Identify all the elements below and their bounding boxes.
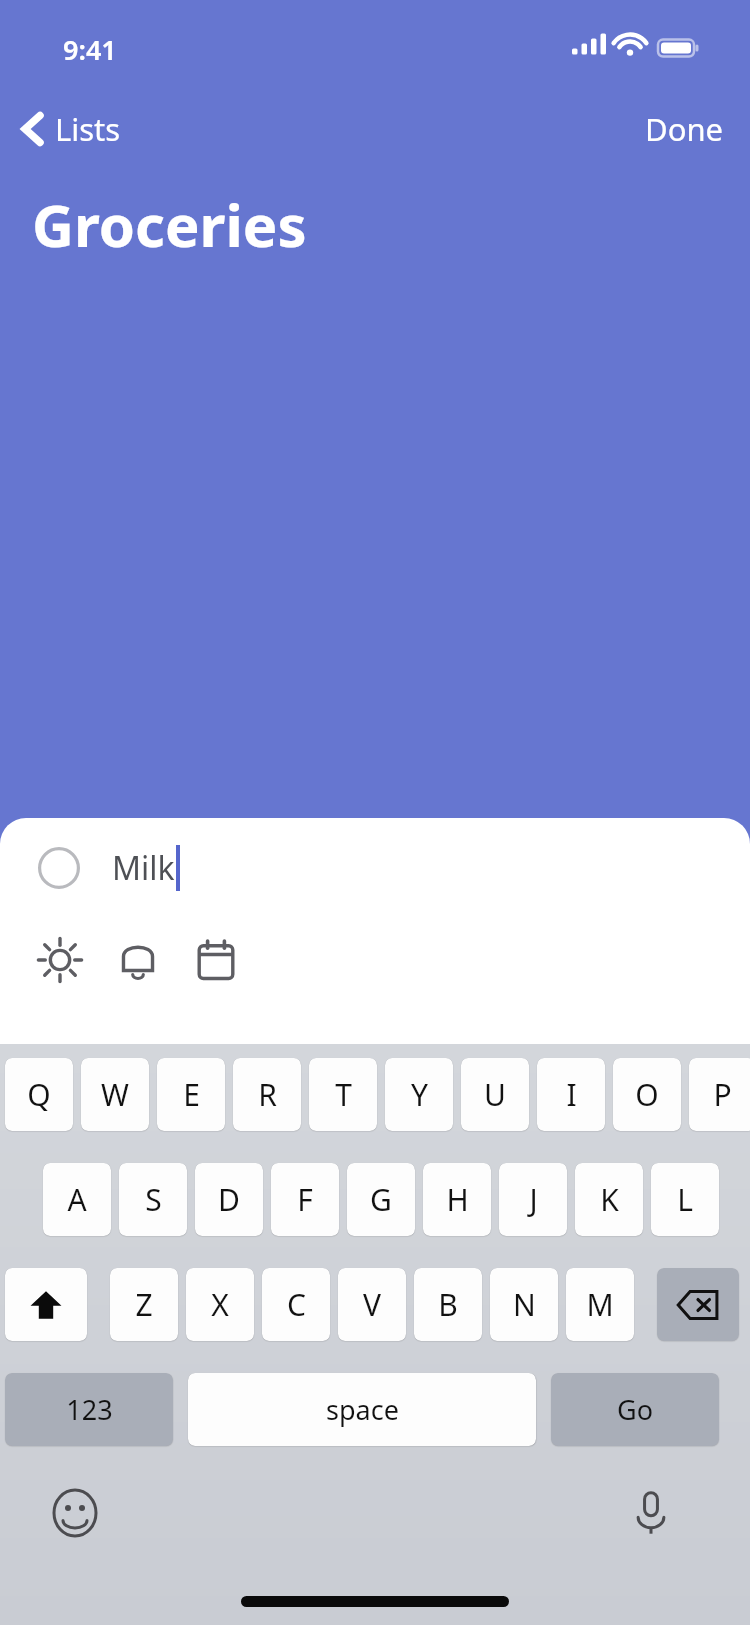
staticText: Done — [645, 108, 724, 150]
staticText: Milk — [112, 846, 175, 890]
button[interactable]: N — [490, 1268, 558, 1341]
button[interactable]: Today — [30, 930, 90, 990]
button[interactable]: S — [119, 1163, 187, 1236]
staticText: O — [635, 1074, 659, 1115]
staticText: Lists — [55, 108, 121, 150]
staticText: M — [586, 1284, 614, 1325]
button[interactable]: Remind me — [108, 930, 168, 990]
staticText: 9:41 — [63, 31, 117, 68]
button[interactable]: G — [347, 1163, 415, 1236]
staticText: K — [600, 1179, 619, 1220]
staticText: space — [326, 1391, 399, 1428]
button[interactable]: L — [651, 1163, 719, 1236]
button[interactable]: I — [537, 1058, 605, 1131]
button[interactable]: F — [271, 1163, 339, 1236]
button[interactable]: R — [233, 1058, 301, 1131]
button[interactable]: X — [186, 1268, 254, 1341]
button[interactable]: Q — [5, 1058, 73, 1131]
staticText: T — [335, 1074, 352, 1115]
button[interactable]: Date — [186, 930, 246, 990]
staticText: P — [713, 1074, 732, 1115]
staticText: B — [438, 1284, 458, 1325]
button[interactable]: A — [43, 1163, 111, 1236]
button[interactable]: P — [689, 1058, 750, 1131]
button[interactable]: Lists — [12, 102, 131, 156]
staticText: G — [370, 1179, 392, 1220]
button[interactable]: W — [81, 1058, 149, 1131]
staticText: V — [363, 1284, 381, 1325]
staticText: C — [287, 1284, 306, 1325]
button[interactable]: Z — [110, 1268, 178, 1341]
button[interactable]: J — [499, 1163, 567, 1236]
button[interactable]: Dictation — [620, 1482, 682, 1544]
button[interactable] — [5, 1268, 87, 1341]
button[interactable]: M — [566, 1268, 634, 1341]
staticText: I — [566, 1074, 577, 1115]
staticText: Go — [617, 1391, 653, 1428]
staticText: F — [297, 1179, 313, 1220]
staticText: W — [101, 1074, 129, 1115]
button[interactable]: V — [338, 1268, 406, 1341]
button[interactable]: Go — [551, 1373, 719, 1446]
button[interactable] — [657, 1268, 739, 1341]
staticText: S — [145, 1179, 162, 1220]
staticText: N — [513, 1284, 536, 1325]
staticText: J — [529, 1179, 538, 1220]
staticText: E — [183, 1074, 200, 1115]
staticText: D — [218, 1179, 240, 1220]
button[interactable]: T — [309, 1058, 377, 1131]
button[interactable]: E — [157, 1058, 225, 1131]
staticText: X — [211, 1284, 229, 1325]
button[interactable]: D — [195, 1163, 263, 1236]
button[interactable]: space — [188, 1373, 536, 1446]
button[interactable]: 123 — [5, 1373, 173, 1446]
staticText: R — [258, 1074, 277, 1115]
button[interactable]: Emoji — [44, 1482, 106, 1544]
button[interactable]: Y — [385, 1058, 453, 1131]
staticText: Y — [411, 1074, 428, 1115]
button[interactable]: C — [262, 1268, 330, 1341]
button[interactable]: O — [613, 1058, 681, 1131]
staticText: Q — [27, 1074, 51, 1115]
button[interactable]: Done — [635, 102, 734, 156]
staticText: L — [677, 1179, 693, 1220]
staticText: U — [484, 1074, 506, 1115]
staticText: A — [67, 1179, 87, 1220]
button[interactable]: K — [575, 1163, 643, 1236]
button[interactable]: B — [414, 1268, 482, 1341]
staticText: Groceries — [32, 185, 307, 264]
button[interactable]: U — [461, 1058, 529, 1131]
button[interactable]: H — [423, 1163, 491, 1236]
staticText: 123 — [66, 1391, 113, 1428]
staticText: H — [446, 1179, 469, 1220]
staticText: Z — [135, 1284, 153, 1325]
